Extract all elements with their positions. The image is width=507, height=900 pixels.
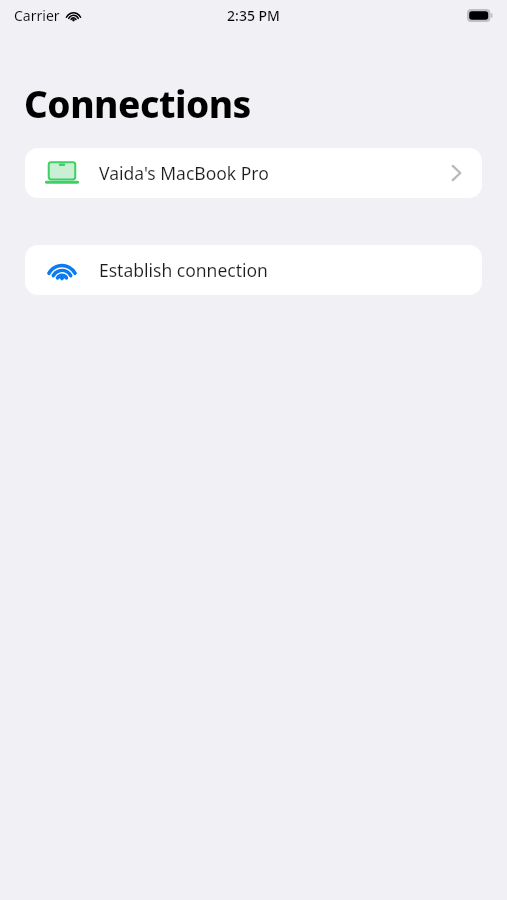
staticText: Connections bbox=[24, 78, 251, 128]
staticText: 2:35 PM bbox=[227, 6, 280, 25]
staticText: Establish connection bbox=[99, 258, 268, 282]
staticText: Vaida's MacBook Pro bbox=[99, 161, 269, 185]
button[interactable]: Establish connection bbox=[25, 245, 482, 295]
button[interactable]: Vaida's MacBook Pro bbox=[25, 148, 482, 198]
staticText: Carrier bbox=[14, 6, 60, 25]
other: Open device details bbox=[450, 163, 462, 183]
